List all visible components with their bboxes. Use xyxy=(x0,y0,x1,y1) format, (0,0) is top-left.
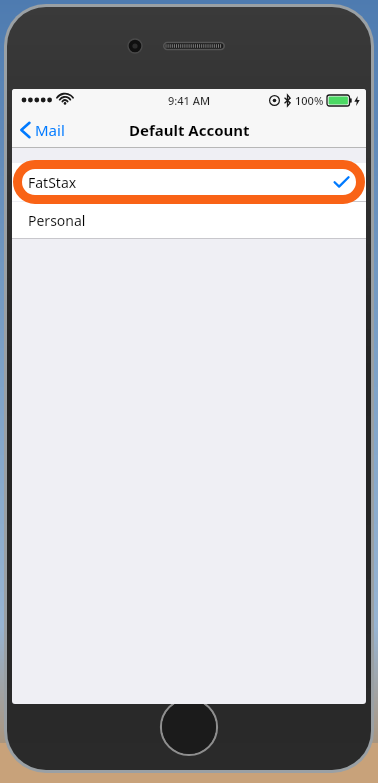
staticText: Mail xyxy=(35,120,65,140)
button[interactable]: Mail xyxy=(12,116,75,144)
button[interactable]: Personal xyxy=(12,202,366,238)
button[interactable]: FatStax xyxy=(12,163,366,201)
staticText: 9:41 AM xyxy=(168,93,211,108)
staticText: Personal xyxy=(28,211,86,230)
staticText: 100% xyxy=(295,93,324,108)
staticText: FatStax xyxy=(28,173,77,192)
staticText: Default Account xyxy=(129,120,250,140)
